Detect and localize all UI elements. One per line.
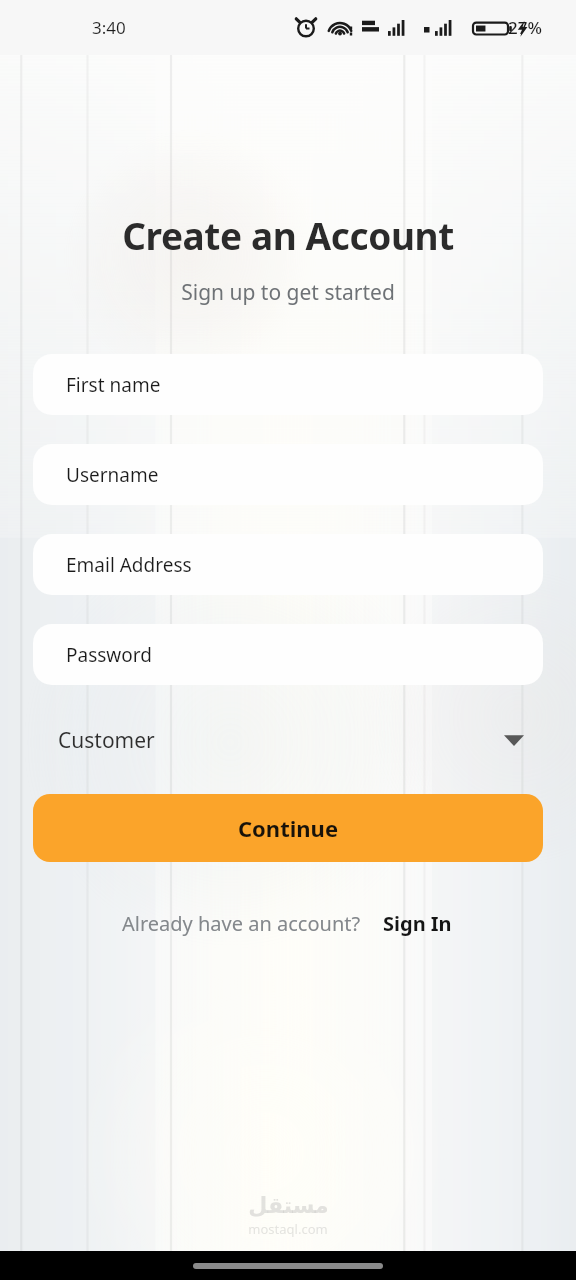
staticText: First name	[66, 372, 161, 398]
staticText: Sign up to get started	[0, 278, 576, 307]
staticText: 27%	[508, 16, 542, 39]
staticText: Sign In	[383, 910, 452, 937]
staticText: Create an Account	[0, 210, 576, 260]
button[interactable]: Continue	[33, 794, 543, 862]
button[interactable]: Email Address	[33, 534, 543, 595]
button[interactable]: Sign In	[381, 906, 454, 941]
other: Select account type	[504, 733, 524, 747]
staticText: Password	[66, 642, 152, 668]
button[interactable]: First name	[33, 354, 543, 415]
button[interactable]: Username	[33, 444, 543, 505]
staticText: mostaql.com	[248, 1220, 328, 1238]
staticText: 3:40	[92, 16, 126, 39]
staticText: Customer	[58, 726, 155, 755]
staticText: Username	[66, 462, 159, 488]
button[interactable]: Customer	[0, 714, 576, 766]
staticText: Already have an account?	[122, 910, 361, 937]
staticText: Email Address	[66, 552, 192, 578]
button[interactable]: Password	[33, 624, 543, 685]
staticText: Continue	[238, 813, 339, 843]
staticText: مستقل	[248, 1193, 329, 1219]
